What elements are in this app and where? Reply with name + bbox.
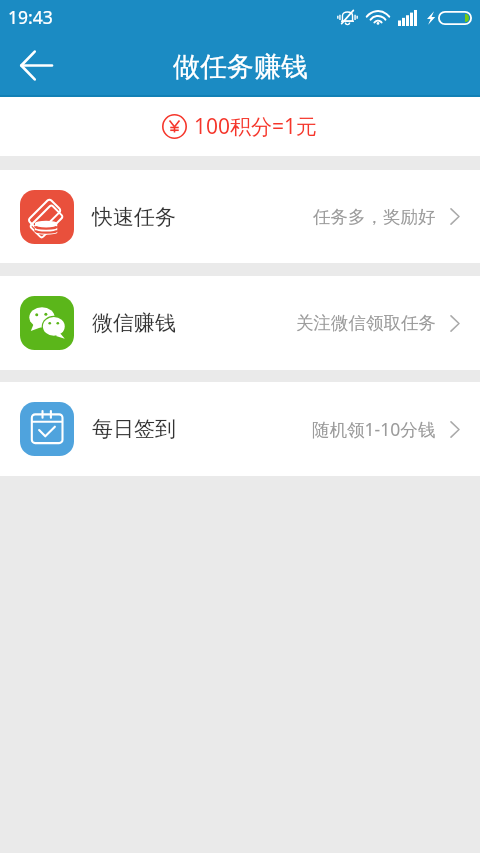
button[interactable]: 100积分=1元 [0, 97, 480, 156]
button[interactable]: 每日签到 [0, 382, 480, 476]
staticText: 关注微信领取任务 [296, 312, 436, 334]
staticText: 快速任务 [92, 204, 176, 230]
staticText: 任务多，奖励好 [313, 206, 436, 228]
button[interactable]: 微信赚钱 [0, 276, 480, 370]
staticText: 100积分=1元 [194, 112, 318, 141]
staticText: 19:43 [8, 5, 53, 29]
staticText: 微信赚钱 [92, 310, 176, 336]
staticText: 做任务赚钱 [173, 50, 308, 84]
staticText: 每日签到 [92, 416, 176, 442]
button[interactable]: Back [0, 34, 72, 97]
staticText: 随机领1-10分钱 [312, 417, 436, 441]
button[interactable]: 快速任务 [0, 170, 480, 263]
